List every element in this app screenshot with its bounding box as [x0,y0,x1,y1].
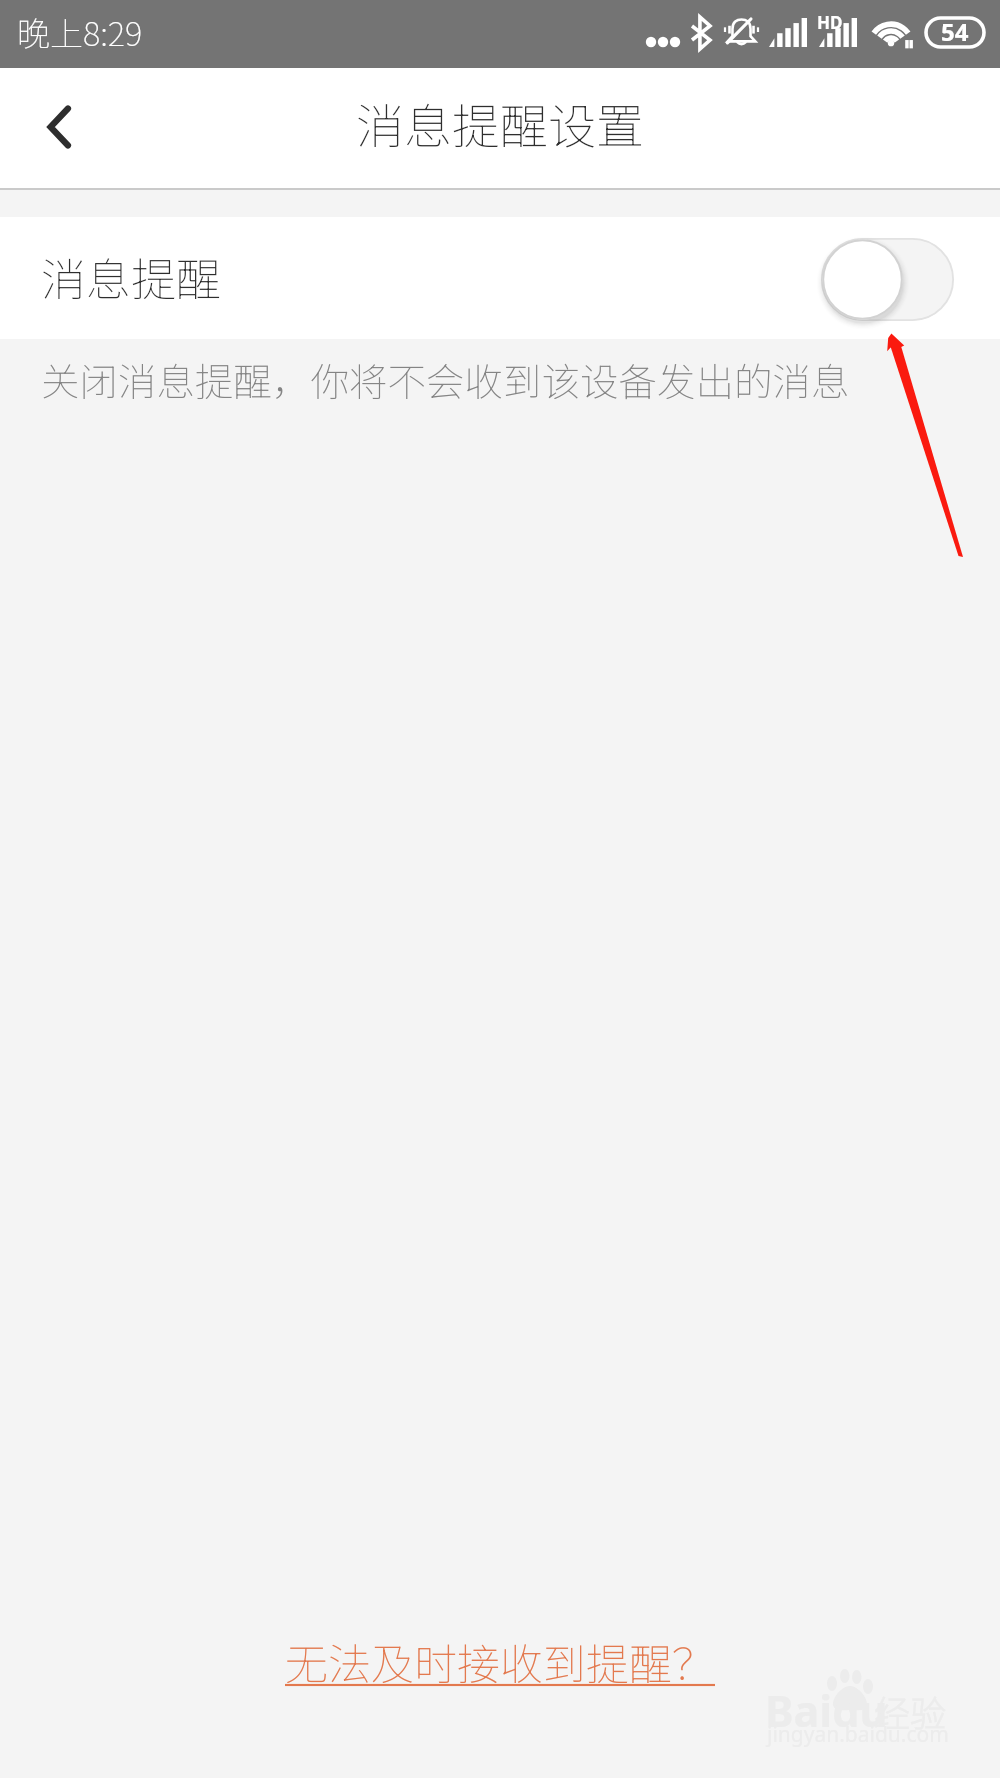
button[interactable]: 消息提醒 switch, off [821,238,954,321]
staticText: 经验 [874,1685,947,1737]
staticText: 晚上8:29 [17,8,143,56]
staticText: 无法及时接收到提醒？ [285,1630,715,1692]
staticText: jingyan.baidu.com [767,1720,949,1749]
staticText: Baidu [765,1681,888,1740]
button[interactable]: 消息提醒 [0,217,1000,339]
button[interactable]: 无法及时接收到提醒？ [285,1630,715,1692]
button[interactable]: Back [0,68,118,188]
staticText: 消息提醒设置 [356,88,645,158]
staticText: HD [817,11,843,34]
staticText: 消息提醒 [41,244,222,309]
staticText: 关闭消息提醒，你将不会收到该设备发出的消息 [41,351,850,407]
staticText: 54 [941,15,969,48]
